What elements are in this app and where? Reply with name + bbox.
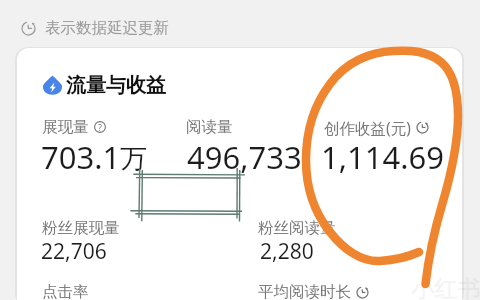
staticText: 点击率 — [42, 282, 89, 300]
button[interactable]: 创作收益(元) — [324, 117, 429, 138]
staticText: 粉丝阅读量 — [258, 218, 336, 238]
other: 数据延迟说明 — [21, 21, 36, 36]
staticText: 阅读量 — [186, 117, 233, 137]
button[interactable]: 粉丝阅读量 — [258, 218, 336, 238]
staticText: 表示数据延迟更新 — [45, 18, 169, 38]
staticText: ? — [98, 121, 102, 133]
button[interactable] — [17, 48, 462, 300]
staticText: 496,733 — [187, 136, 302, 178]
button[interactable]: 点击率 — [42, 282, 89, 300]
staticText: 小红书 — [411, 275, 480, 300]
staticText: 流量与收益 — [66, 73, 166, 98]
staticText: 展现量 — [42, 117, 89, 137]
staticText: 1,114.69 — [321, 136, 445, 178]
staticText: 平均阅读时长 — [258, 282, 351, 300]
button[interactable]: 流量与收益 — [43, 73, 166, 98]
button[interactable]: 平均阅读时长 — [258, 282, 369, 300]
staticText: 万 — [120, 142, 147, 176]
staticText: 703.1 — [41, 136, 121, 178]
button[interactable]: 粉丝展现量 — [42, 218, 120, 238]
staticText: 2,280 — [260, 237, 314, 266]
button[interactable]: 展现量 — [42, 117, 106, 137]
staticText: 粉丝展现量 — [42, 218, 120, 238]
staticText: 22,706 — [41, 237, 107, 266]
staticText: 创作收益(元) — [324, 117, 411, 138]
button[interactable]: 数据延迟说明 — [21, 18, 169, 38]
button[interactable]: 阅读量 — [186, 117, 233, 137]
